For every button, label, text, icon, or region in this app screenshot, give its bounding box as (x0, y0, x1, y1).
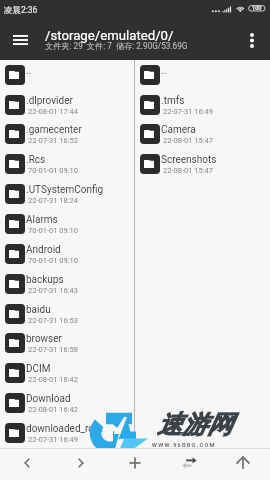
staticText: Camera (161, 124, 196, 136)
button[interactable]: Swap panes (162, 449, 216, 480)
staticText: .tmfs (161, 95, 185, 107)
staticText: browser (26, 333, 62, 345)
staticText: 70-01-01 09:10 (28, 226, 78, 235)
staticText: .Rcs (26, 154, 46, 166)
staticText: 22-07-31 18:24 (28, 196, 78, 205)
staticText: .dlprovider (26, 95, 73, 107)
button[interactable]: Android (0, 244, 134, 274)
button[interactable]: .gamecenter (0, 124, 134, 154)
staticText: 70-01-01 09:10 (28, 256, 78, 265)
staticText: 22-08-01 18:42 (28, 375, 78, 384)
staticText: 22-07-31 16:53 (28, 316, 78, 325)
button[interactable]: Up (216, 449, 270, 480)
staticText: .. (161, 65, 167, 77)
staticText: 22-07-31 16:49 (28, 435, 78, 444)
staticText: 100 (252, 5, 262, 12)
button[interactable]: Back (0, 449, 54, 480)
staticText: 22-08-01 17:44 (28, 107, 78, 116)
button[interactable]: More options (240, 23, 264, 57)
button[interactable]: Forward (54, 449, 108, 480)
button[interactable]: New folder (108, 449, 162, 480)
staticText: 70-01-01 09:10 (28, 166, 78, 175)
staticText: 22-07-31 16:43 (28, 286, 78, 295)
button[interactable]: browser (0, 333, 134, 363)
button[interactable]: .tmfs (135, 95, 270, 125)
button[interactable]: Camera (135, 124, 270, 154)
staticText: Alarms (26, 214, 58, 226)
button[interactable]: downloaded_rom (0, 423, 134, 453)
button[interactable]: .. (135, 65, 270, 95)
staticText: /storage/emulated/0/ (45, 28, 174, 43)
staticText: .UTSystemConfig (26, 184, 104, 196)
staticText: 22-08-01 16:42 (28, 405, 78, 414)
button[interactable]: Alarms (0, 214, 134, 244)
button[interactable]: .UTSystemConfig (0, 184, 134, 214)
staticText: 22-08-01 15:47 (163, 166, 213, 175)
staticText: 22-07-31 16:49 (163, 107, 213, 116)
staticText: 22-07-31 16:52 (28, 136, 78, 145)
staticText: 22-08-01 15:47 (163, 136, 213, 145)
button[interactable]: .. (0, 65, 134, 95)
staticText: DCIM (26, 363, 51, 375)
button[interactable]: Screenshots (135, 154, 270, 184)
staticText: .gamecenter (26, 124, 82, 136)
button[interactable]: .dlprovider (0, 95, 134, 125)
staticText: backups (26, 274, 64, 286)
button[interactable]: Download (0, 393, 134, 423)
button[interactable]: baidu (0, 304, 134, 334)
staticText: 文件夹: 29 文件: 7 储存: 2.90G/53.69G (45, 41, 188, 51)
staticText: Download (26, 393, 71, 405)
staticText: Screenshots (161, 154, 217, 166)
staticText: WWW.96BBG.COM (152, 442, 216, 448)
button[interactable]: DCIM (0, 363, 134, 393)
staticText: Android (26, 244, 61, 256)
staticText: 速游网 (157, 409, 232, 440)
staticText: .. (26, 65, 32, 77)
staticText: downloaded_rom (26, 423, 103, 435)
staticText: 凌晨2:36 (4, 5, 38, 16)
button[interactable]: Menu (7, 27, 33, 53)
button[interactable]: backups (0, 274, 134, 304)
staticText: 22-07-31 16:58 (28, 345, 78, 354)
staticText: baidu (26, 304, 51, 316)
button[interactable]: .Rcs (0, 154, 134, 184)
